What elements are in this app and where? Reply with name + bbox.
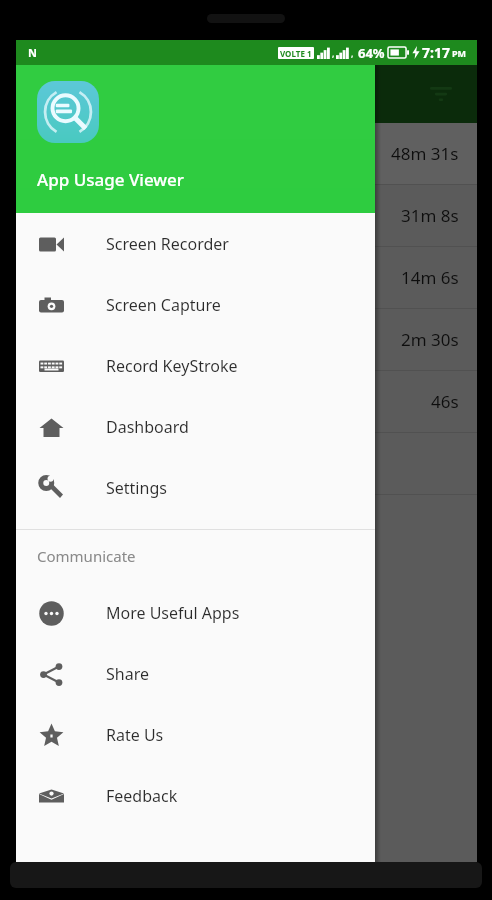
staticText: Record KeyStroke (106, 355, 238, 377)
staticText: Communicate (37, 546, 136, 566)
button[interactable]: Screen Capture (16, 274, 375, 335)
staticText: More Useful Apps (106, 602, 240, 624)
button[interactable] (16, 433, 477, 494)
staticText: Settings (106, 477, 167, 499)
button[interactable]: Record KeyStroke (16, 335, 375, 396)
staticText: 14m 6s (401, 266, 459, 289)
staticText: , (332, 47, 335, 59)
staticText: Share (106, 663, 149, 685)
staticText: 7:17 (422, 43, 450, 62)
staticText: 7:17 (422, 43, 450, 62)
staticText: , (351, 47, 354, 59)
button[interactable]: 31m 8s (16, 185, 477, 246)
button[interactable]: More Useful Apps (16, 582, 375, 643)
staticText: App Usage Viewer (37, 168, 185, 191)
staticText: N (28, 45, 37, 60)
button[interactable]: Share (16, 643, 375, 704)
button[interactable]: Feedback (16, 765, 375, 826)
button[interactable]: App Usage Viewer (16, 65, 375, 213)
staticText: 64% (358, 44, 385, 62)
staticText: Rate Us (106, 724, 164, 746)
button[interactable]: Screen Recorder (16, 213, 375, 274)
staticText: 2m 30s (401, 328, 459, 351)
staticText: Feedback (106, 785, 178, 807)
staticText: N (28, 45, 37, 60)
staticText: , (351, 47, 354, 59)
staticText: Dashboard (106, 416, 189, 438)
button[interactable]: Dashboard (16, 396, 375, 457)
staticText: Screen Capture (106, 294, 221, 316)
staticText: 64% (358, 44, 385, 62)
staticText: VOLTE 1 (280, 48, 312, 59)
staticText: Screen Recorder (106, 233, 229, 255)
button[interactable]: 14m 6s (16, 247, 477, 308)
staticText: , (332, 47, 335, 59)
staticText: 48m 31s (391, 142, 459, 165)
staticText: PM (452, 47, 467, 59)
staticText: 46s (431, 390, 459, 413)
button[interactable]: Rate Us (16, 704, 375, 765)
staticText: VOLTE 1 (280, 48, 312, 59)
button[interactable]: 46s (16, 371, 477, 432)
button[interactable]: 2m 30s (16, 309, 477, 370)
staticText: 31m 8s (401, 204, 459, 227)
button[interactable]: Settings (16, 457, 375, 518)
staticText: PM (452, 47, 467, 59)
button[interactable]: Filter (421, 74, 461, 114)
button[interactable]: 48m 31s (16, 123, 477, 184)
